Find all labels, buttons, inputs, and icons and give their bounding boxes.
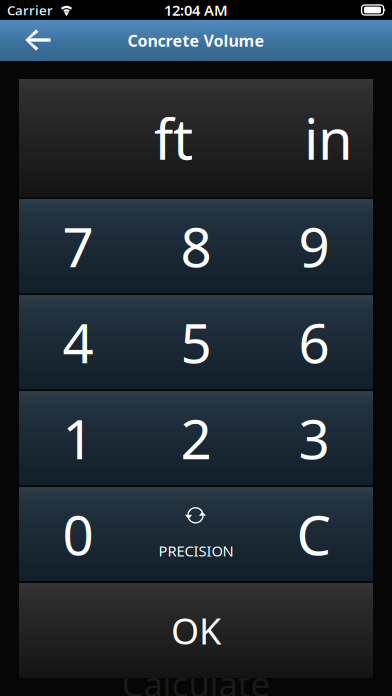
staticText: 5	[180, 306, 211, 378]
button[interactable]: 4	[19, 295, 137, 389]
button[interactable]: 9	[255, 199, 373, 293]
staticText: OK	[171, 607, 221, 654]
button[interactable]: C	[255, 487, 373, 581]
staticText: 3	[298, 402, 329, 474]
staticText: Concrete Volume	[127, 30, 264, 51]
button[interactable]: 6	[255, 295, 373, 389]
button[interactable]: 1	[19, 391, 137, 485]
button[interactable]: 7	[19, 199, 137, 293]
button[interactable]: 2	[137, 391, 255, 485]
button[interactable]: 5	[137, 295, 255, 389]
staticText: in	[304, 101, 353, 175]
staticText: 1	[62, 402, 93, 474]
button[interactable]: 3	[255, 391, 373, 485]
button[interactable]: Back	[0, 20, 66, 61]
staticText: ft	[154, 101, 193, 175]
staticText: Calculate	[121, 660, 270, 696]
staticText: 7	[62, 210, 93, 282]
staticText: 6	[298, 306, 329, 378]
button[interactable]: 8	[137, 199, 255, 293]
staticText: 2	[180, 402, 211, 474]
button[interactable]: OK	[19, 583, 373, 678]
staticText: PRECISION	[158, 541, 233, 560]
staticText: 12:04 AM	[164, 0, 228, 20]
staticText: Carrier	[7, 1, 53, 19]
staticText: 8	[180, 210, 211, 282]
staticText: 4	[62, 306, 93, 378]
staticText: 0	[62, 498, 93, 570]
button[interactable]: 0	[19, 487, 137, 581]
staticText: C	[296, 498, 331, 570]
staticText: 9	[298, 210, 329, 282]
button[interactable]: PRECISION	[137, 487, 255, 581]
